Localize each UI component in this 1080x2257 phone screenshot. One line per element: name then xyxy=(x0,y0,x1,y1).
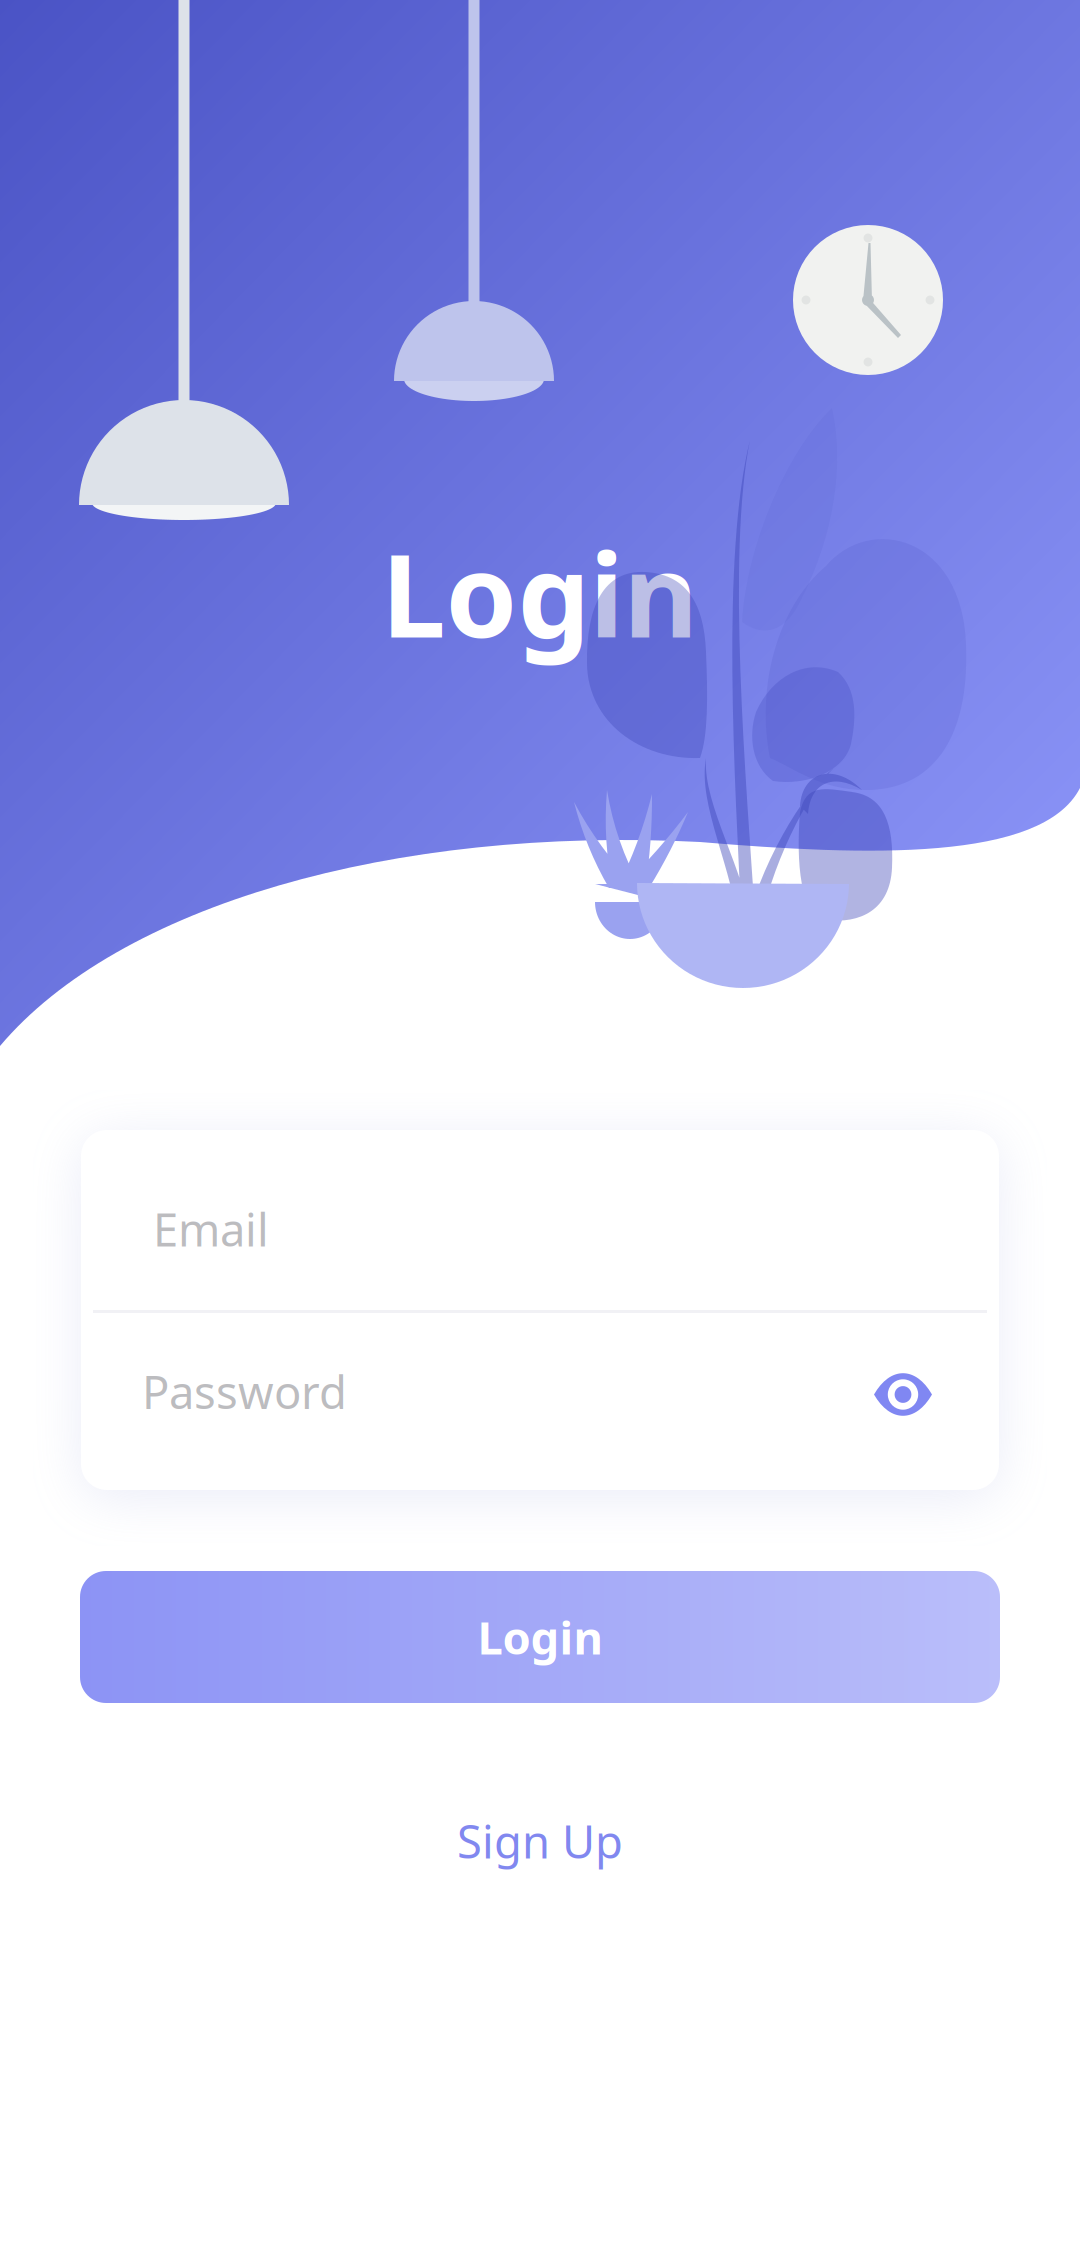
button[interactable]: Show password xyxy=(860,1360,946,1428)
button[interactable]: Login xyxy=(80,1571,1000,1703)
staticText: Sign Up xyxy=(457,1811,623,1871)
staticText: Password xyxy=(142,1361,347,1422)
button[interactable]: Sign Up xyxy=(427,1797,653,1885)
staticText: Email xyxy=(153,1199,269,1259)
staticText: Login xyxy=(477,1607,602,1667)
staticText: Login xyxy=(381,517,698,669)
